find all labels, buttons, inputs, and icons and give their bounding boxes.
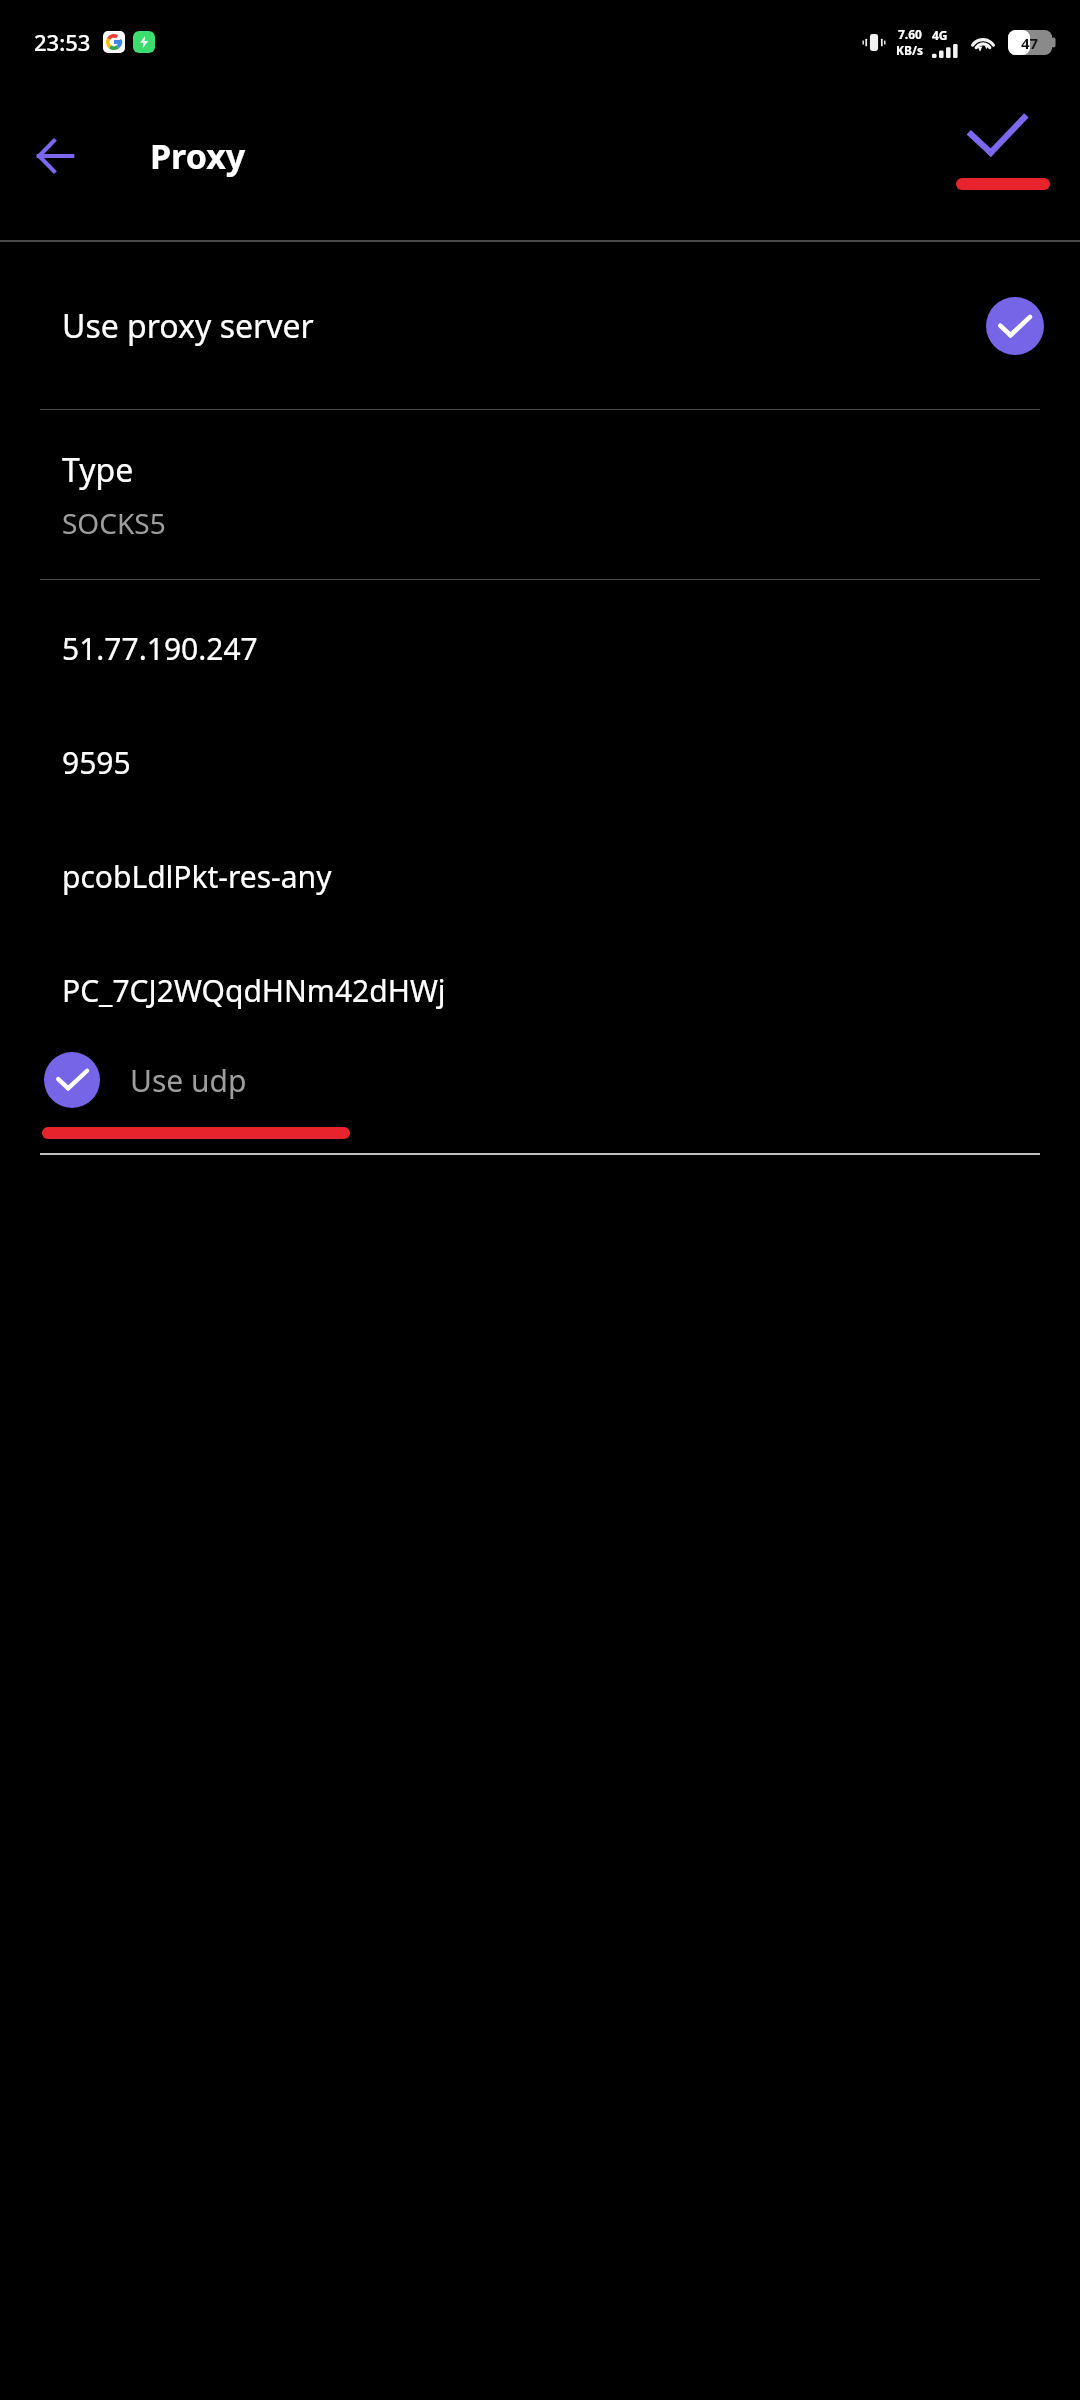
staticText: 7.60 xyxy=(898,26,922,42)
button[interactable]: 51.77.190.247 xyxy=(0,580,1080,717)
button[interactable]: Use udp xyxy=(0,1033,1080,1127)
staticText: Type xyxy=(62,448,134,492)
staticText: Use proxy server xyxy=(62,304,314,348)
staticText: SOCKS5 xyxy=(62,504,166,542)
button[interactable]: pcobLdlPkt-res-any xyxy=(0,831,1080,945)
staticText: 23:53 xyxy=(34,27,91,57)
staticText: Use udp xyxy=(130,1060,247,1101)
staticText: 51.77.190.247 xyxy=(62,628,258,669)
staticText: 47 xyxy=(1008,33,1051,53)
button[interactable]: PC_7CJ2WQqdHNm42dHWj xyxy=(0,945,1080,1033)
staticText: 9595 xyxy=(62,742,131,783)
button[interactable]: 9595 xyxy=(0,717,1080,831)
staticText: KB/s xyxy=(896,42,923,58)
button[interactable]: Use proxy server xyxy=(0,242,1080,409)
button[interactable]: Apply xyxy=(952,84,1080,240)
button[interactable]: Type xyxy=(0,410,1080,579)
staticText: 4G xyxy=(932,27,948,43)
staticText: PC_7CJ2WQqdHNm42dHWj xyxy=(62,970,446,1011)
button[interactable]: Back xyxy=(20,121,90,191)
staticText: pcobLdlPkt-res-any xyxy=(62,856,332,897)
staticText: Proxy xyxy=(150,133,246,179)
